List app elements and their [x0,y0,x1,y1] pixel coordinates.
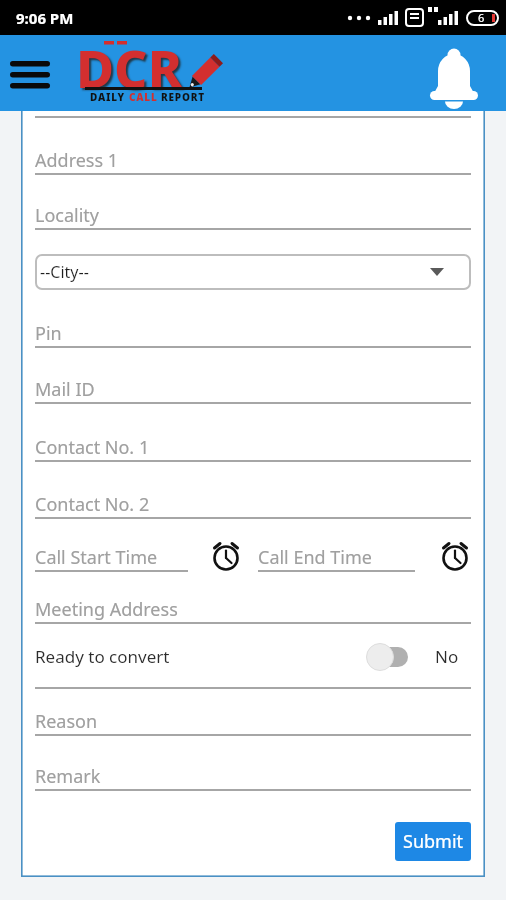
staticText: DCR [76,32,183,103]
staticText: Contact No. 2 [35,492,150,517]
staticText: Call End Time [258,545,372,570]
staticText: No [435,645,459,668]
button[interactable]: Submit [395,822,471,861]
button[interactable] [429,47,479,109]
staticText: Locality [35,203,100,228]
staticText: --City-- [40,261,89,283]
staticText: Submit [403,829,464,854]
staticText: 9:06 PM [16,8,74,28]
staticText: Reason [35,709,98,734]
staticText: Meeting Address [35,597,178,622]
staticText: DAILY [90,90,129,104]
staticText: Remark [35,764,101,789]
button[interactable] [10,59,50,91]
staticText: Call Start Time [35,545,158,570]
button[interactable]: --City-- [35,254,471,290]
staticText: Pin [35,321,62,346]
staticText: Contact No. 1 [35,435,150,460]
button[interactable]: Ready to convert [35,643,471,669]
staticText: CALL [129,90,161,104]
staticText: REPORT [161,90,206,104]
staticText: 6 [478,10,485,25]
button[interactable] [439,540,471,572]
button[interactable] [364,643,408,669]
staticText: Ready to convert [35,645,170,668]
staticText: Mail ID [35,377,95,402]
button[interactable] [210,540,242,572]
staticText: Address 1 [35,148,119,173]
